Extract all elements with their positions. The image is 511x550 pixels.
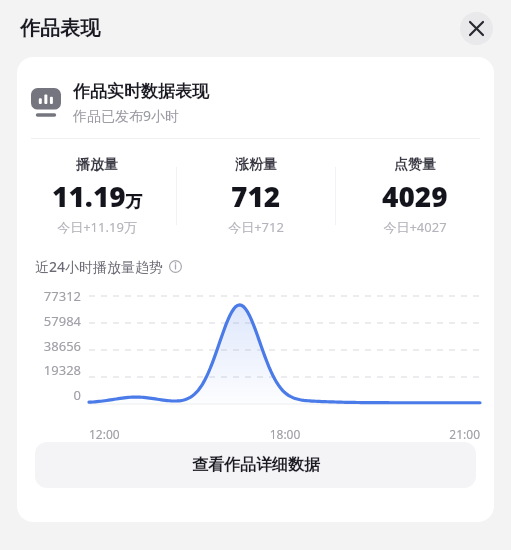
staticText: 712 (231, 177, 281, 215)
staticText: 涨粉量 (235, 156, 277, 174)
button[interactable]: 播放量 (17, 156, 176, 236)
staticText: 作品表现 (20, 16, 100, 41)
button[interactable]: Close (460, 12, 493, 45)
staticText: 57984 (43, 312, 81, 330)
button[interactable]: 查看作品详细数据 (35, 442, 476, 488)
staticText: 查看作品详细数据 (192, 455, 320, 475)
staticText: 0 (73, 386, 81, 404)
staticText: 12:00 (89, 426, 220, 442)
staticText: 作品已发布9小时 (73, 106, 180, 125)
staticText: 近24小时播放量趋势 (35, 257, 164, 276)
staticText: 21:00 (350, 426, 480, 442)
staticText: 点赞量 (394, 156, 436, 174)
button[interactable]: 点赞量 (336, 156, 494, 236)
staticText: 作品实时数据表现 (73, 81, 209, 102)
button[interactable]: 涨粉量 (177, 156, 335, 236)
staticText: 38656 (43, 337, 81, 355)
staticText: 今日+11.19万 (57, 218, 137, 236)
staticText: 11.19 (52, 177, 126, 215)
staticText: 19328 (43, 361, 81, 379)
staticText: 今日+4027 (383, 218, 447, 236)
staticText: 今日+712 (228, 218, 284, 236)
staticText: 播放量 (76, 156, 118, 174)
staticText: 18:00 (220, 426, 350, 442)
staticText: 万 (126, 192, 142, 212)
staticText: 77312 (43, 287, 81, 305)
staticText: 4029 (382, 177, 448, 215)
